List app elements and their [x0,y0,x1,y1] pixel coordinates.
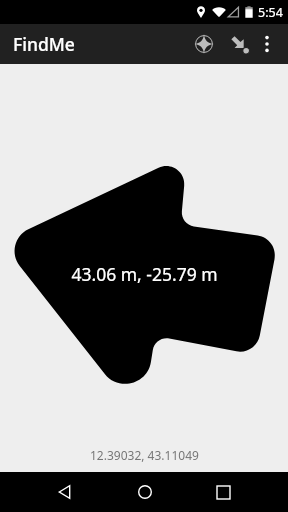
button[interactable]: Compass [186,24,222,64]
staticText: 43.06 m, -25.79 m [71,262,218,286]
button[interactable]: Set location [221,24,257,64]
button[interactable]: More options [249,24,285,64]
button[interactable]: Home [125,472,165,512]
staticText: 12.39032, 43.11049 [90,447,199,463]
staticText: 5:54 [258,4,283,21]
button[interactable]: Back [44,472,84,512]
button[interactable]: Recents [203,472,243,512]
staticText: FindMe [13,32,75,56]
